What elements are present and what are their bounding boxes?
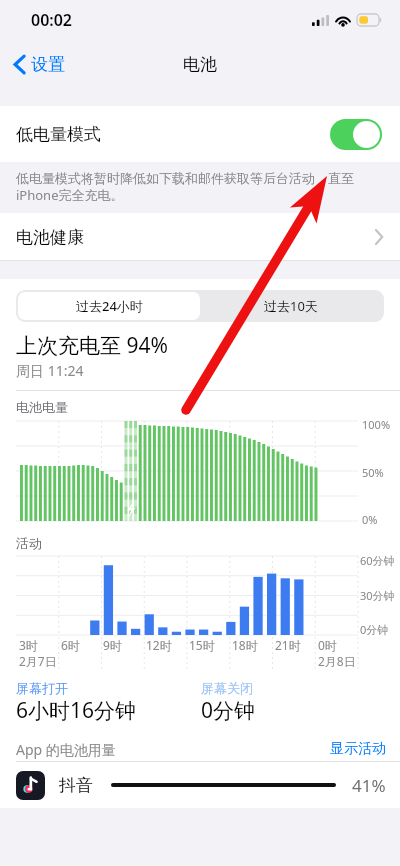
button[interactable]: 过去24小时: [18, 292, 200, 320]
button[interactable]: 电池健康: [0, 213, 400, 261]
staticText: 周日 11:24: [16, 361, 84, 380]
staticText: 屏幕打开: [16, 680, 68, 696]
staticText: 0分钟: [360, 622, 389, 637]
staticText: 6小时16分钟: [16, 696, 137, 725]
staticText: 2月7日: [19, 653, 57, 669]
staticText: 2月8日: [318, 653, 356, 669]
staticText: 6时: [61, 637, 80, 653]
button[interactable]: 设置: [10, 48, 69, 81]
staticText: 电池健康: [16, 227, 84, 248]
staticText: 显示活动: [330, 740, 386, 758]
staticText: 设置: [31, 54, 65, 75]
staticText: 0时: [318, 637, 337, 653]
staticText: 0分钟: [201, 696, 256, 725]
button[interactable]: 过去10天: [200, 292, 382, 320]
staticText: 18时: [232, 637, 258, 653]
staticText: 上次充电至 94%: [16, 331, 168, 360]
staticText: 60分钟: [360, 553, 395, 568]
staticText: 30分钟: [360, 588, 395, 603]
staticText: 41%: [352, 774, 386, 797]
staticText: 低电量模式: [16, 124, 101, 145]
button[interactable]: 低电量模式: [0, 106, 400, 162]
staticText: 9时: [103, 637, 122, 653]
staticText: 屏幕关闭: [201, 680, 253, 696]
button[interactable]: 低电量模式开关: [330, 119, 382, 150]
staticText: 电池: [183, 54, 217, 75]
staticText: 21时: [275, 637, 301, 653]
button[interactable]: 抖音: [0, 762, 400, 808]
staticText: 100%: [362, 417, 391, 432]
staticText: App 的电池用量: [16, 740, 116, 759]
staticText: 过去24小时: [76, 297, 143, 315]
staticText: 50%: [362, 465, 384, 480]
staticText: 12时: [146, 637, 172, 653]
staticText: 15时: [189, 637, 215, 653]
staticText: 00:02: [31, 9, 73, 31]
staticText: 3时: [19, 637, 38, 653]
staticText: 活动: [16, 535, 42, 551]
staticText: 0%: [362, 512, 378, 527]
staticText: 低电量模式将暂时降低如下载和邮件获取等后台活动，直至 iPhone完全充电。: [16, 169, 386, 204]
staticText: 电池电量: [16, 399, 68, 415]
staticText: 抖音: [59, 775, 93, 796]
button[interactable]: 显示活动: [330, 740, 386, 758]
staticText: 过去10天: [264, 297, 318, 315]
